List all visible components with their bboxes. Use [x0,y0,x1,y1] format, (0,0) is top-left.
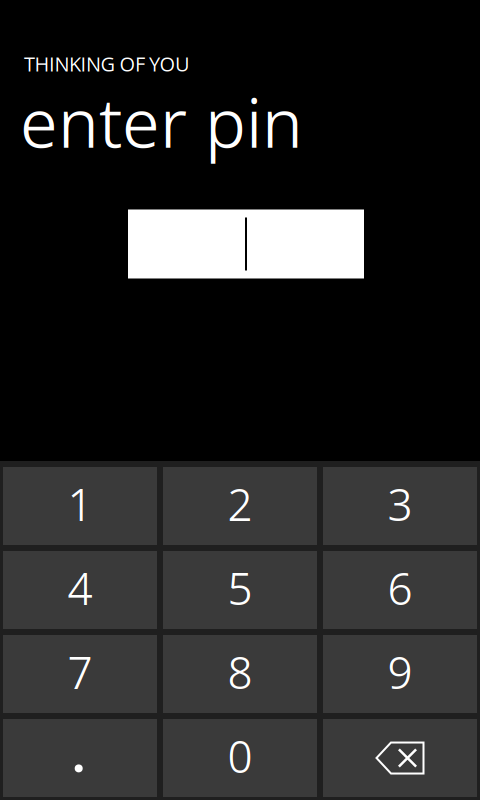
staticText: 5 [227,558,252,618]
button[interactable]: 2 [163,467,317,545]
staticText: 2 [227,474,252,534]
button[interactable]: 1 [3,467,157,545]
staticText: 7 [67,642,92,702]
button[interactable]: 3 [323,467,477,545]
staticText: 0 [227,726,252,786]
button[interactable]: 8 [163,635,317,713]
button[interactable]: 4 [3,551,157,629]
button[interactable]: 9 [323,635,477,713]
button[interactable]: 5 [163,551,317,629]
staticText: 3 [387,474,412,534]
staticText: 9 [387,642,412,702]
staticText: 1 [67,474,92,534]
button[interactable]: 0 [163,719,317,797]
staticText: 4 [67,558,92,618]
staticText: 6 [387,558,412,618]
staticText: 8 [227,642,252,702]
button[interactable]: Backspace [323,719,477,797]
button[interactable]: 6 [323,551,477,629]
staticText: enter pin [20,75,303,167]
staticText: THINKING OF YOU [24,50,190,77]
button[interactable]: Decimal point [3,719,157,797]
button[interactable]: 7 [3,635,157,713]
